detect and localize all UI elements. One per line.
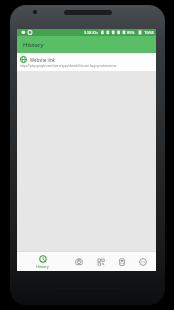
button[interactable]: Website link [17,53,156,71]
button[interactable] [111,252,132,271]
staticText: 3.58 K/s [84,30,99,35]
button[interactable] [90,252,111,271]
button[interactable] [132,252,153,271]
staticText: Website link [30,57,55,63]
button[interactable] [68,252,90,271]
staticText: History [23,41,44,49]
staticText: https://play.google.com/store/apps/detai… [20,64,117,68]
staticText: History [36,264,49,269]
staticText: 85% [127,30,135,35]
staticText: 10:58 [144,30,154,35]
button[interactable]: History [17,252,68,271]
